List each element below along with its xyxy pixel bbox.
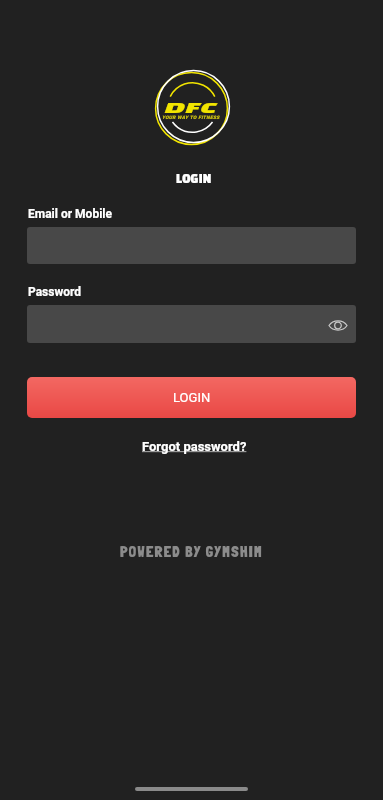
- staticText: DFC: [164, 99, 218, 115]
- staticText: LOGIN: [176, 172, 212, 186]
- staticText: Password: [28, 285, 82, 299]
- button[interactable]: LOGIN: [27, 377, 356, 418]
- staticText: YOUR WAY TO FITNESS: [162, 115, 220, 120]
- button[interactable]: Forgot password?: [142, 439, 247, 454]
- staticText: LOGIN: [173, 390, 211, 405]
- staticText: Email or Mobile: [28, 207, 112, 221]
- staticText: POWERED BY GYMSHIM: [120, 543, 263, 561]
- button[interactable]: Show password: [27, 305, 356, 343]
- button[interactable]: Show password: [324, 310, 352, 338]
